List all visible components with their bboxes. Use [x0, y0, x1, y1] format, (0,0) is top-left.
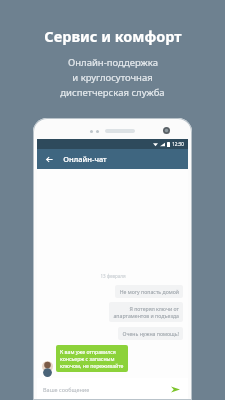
- staticText: К вам уже отправился консьерж с запасным…: [60, 348, 124, 369]
- button[interactable]: Send: [168, 382, 182, 396]
- staticText: 13 февраля: [100, 273, 126, 279]
- staticText: 12:30: [172, 141, 184, 147]
- button[interactable]: Не могу попасть домой: [115, 285, 183, 298]
- button[interactable]: Back: [43, 153, 55, 165]
- button[interactable]: К вам уже отправился консьерж с запасным…: [56, 345, 128, 372]
- staticText: и круглосуточная: [72, 71, 153, 84]
- staticText: Очень нужна помощь!: [122, 330, 179, 337]
- staticText: диспетчерская служба: [60, 86, 165, 99]
- staticText: Не могу попасть домой: [119, 288, 179, 295]
- button[interactable]: Я потерял ключи от апартаментов и подъез…: [109, 302, 183, 322]
- button[interactable]: Ваше сообщение: [43, 386, 168, 393]
- button[interactable]: Очень нужна помощь!: [118, 327, 183, 340]
- staticText: Онлайн-поддержка: [68, 56, 158, 69]
- staticText: Онлайн-чат: [63, 154, 107, 164]
- staticText: Я потерял ключи от апартаментов и подъез…: [113, 305, 179, 319]
- staticText: Ваше сообщение: [43, 386, 90, 393]
- staticText: Сервис и комфорт: [44, 26, 182, 46]
